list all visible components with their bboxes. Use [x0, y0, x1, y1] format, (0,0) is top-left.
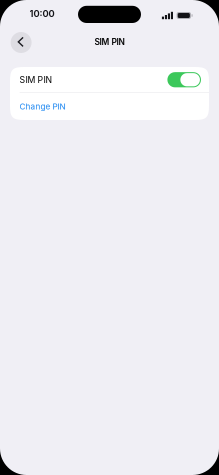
staticText: 10:00	[29, 8, 54, 19]
button[interactable]: Back	[11, 32, 32, 53]
staticText: SIM PIN	[94, 37, 124, 47]
button[interactable]: SIM PIN	[167, 72, 201, 87]
staticText: SIM PIN	[20, 74, 53, 85]
button[interactable]: Change PIN	[10, 93, 209, 120]
staticText: Change PIN	[20, 102, 66, 111]
